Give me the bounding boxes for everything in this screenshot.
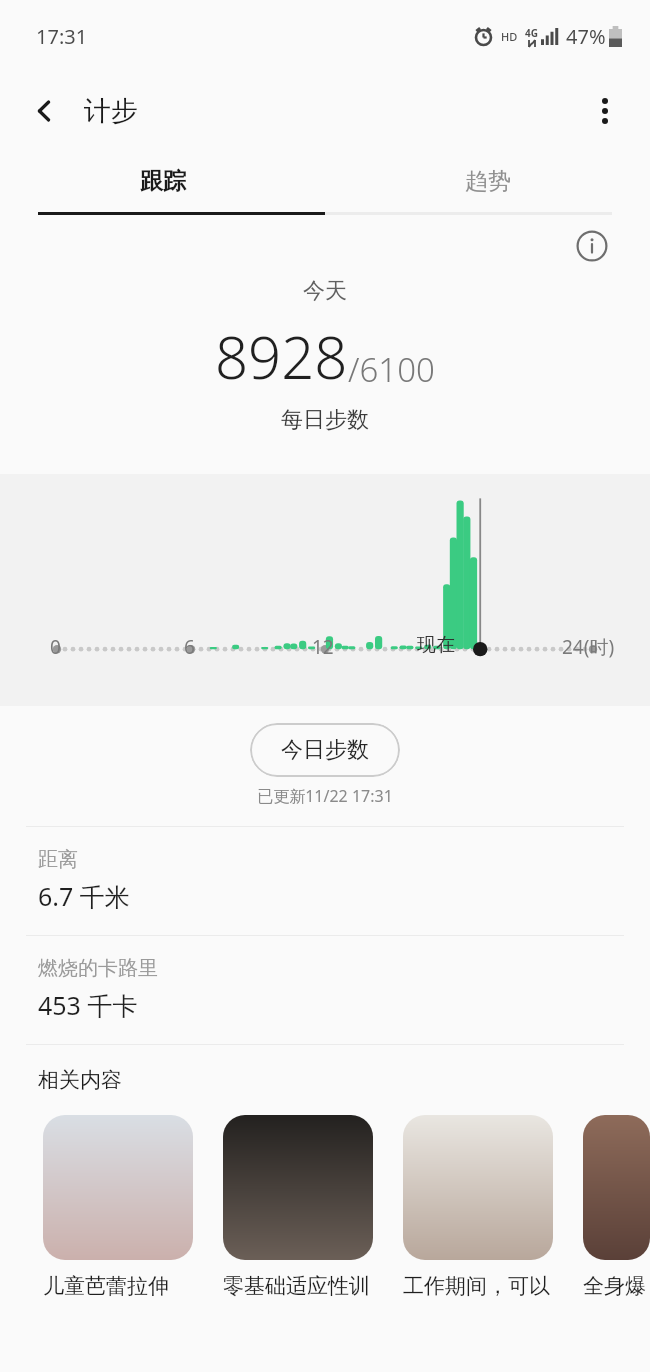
button[interactable]: Information bbox=[572, 226, 612, 266]
staticText: 儿童芭蕾拉伸 bbox=[43, 1273, 169, 1299]
staticText: /6100 bbox=[348, 347, 435, 392]
button[interactable]: 趋势 bbox=[325, 150, 650, 212]
staticText: 燃烧的卡路里 bbox=[38, 956, 158, 981]
staticText: 趋势 bbox=[465, 167, 511, 196]
staticText: 6 bbox=[184, 634, 195, 660]
button[interactable]: 跟踪 bbox=[0, 150, 325, 212]
button[interactable]: 工作期间，可以 bbox=[403, 1115, 553, 1299]
staticText: 现在 bbox=[417, 633, 455, 657]
button[interactable]: More options bbox=[582, 88, 628, 134]
staticText: 工作期间，可以 bbox=[403, 1273, 550, 1299]
button[interactable]: 零基础适应性训 bbox=[223, 1115, 373, 1299]
button[interactable]: 今日步数 bbox=[250, 723, 400, 777]
staticText: 今日步数 bbox=[281, 736, 369, 764]
staticText: 8928 bbox=[215, 317, 348, 396]
staticText: 跟踪 bbox=[140, 167, 186, 196]
staticText: 零基础适应性训 bbox=[223, 1273, 370, 1299]
staticText: 24(时) bbox=[562, 634, 615, 660]
button[interactable]: 燃烧的卡路里 bbox=[0, 936, 650, 1044]
staticText: 17:31 bbox=[36, 23, 88, 50]
staticText: 47% bbox=[566, 23, 606, 50]
button[interactable]: 全身爆炸 bbox=[583, 1115, 650, 1299]
button[interactable]: 儿童芭蕾拉伸 bbox=[43, 1115, 193, 1299]
staticText: 0 bbox=[50, 634, 61, 660]
staticText: 已更新11/22 17:31 bbox=[0, 785, 650, 807]
staticText: 相关内容 bbox=[38, 1067, 122, 1093]
staticText: 每日步数 bbox=[281, 406, 369, 434]
staticText: 全身爆炸 bbox=[583, 1273, 650, 1299]
button[interactable]: Back bbox=[24, 89, 68, 133]
staticText: 今天 bbox=[303, 277, 347, 305]
button[interactable]: 距离 bbox=[0, 827, 650, 935]
staticText: 12 bbox=[312, 634, 334, 660]
staticText: 4G bbox=[525, 26, 538, 40]
staticText: 6.7 千米 bbox=[38, 879, 130, 913]
staticText: 计步 bbox=[84, 94, 138, 128]
staticText: 距离 bbox=[38, 847, 78, 872]
staticText: HD bbox=[501, 29, 518, 44]
staticText: 453 千卡 bbox=[38, 988, 138, 1022]
